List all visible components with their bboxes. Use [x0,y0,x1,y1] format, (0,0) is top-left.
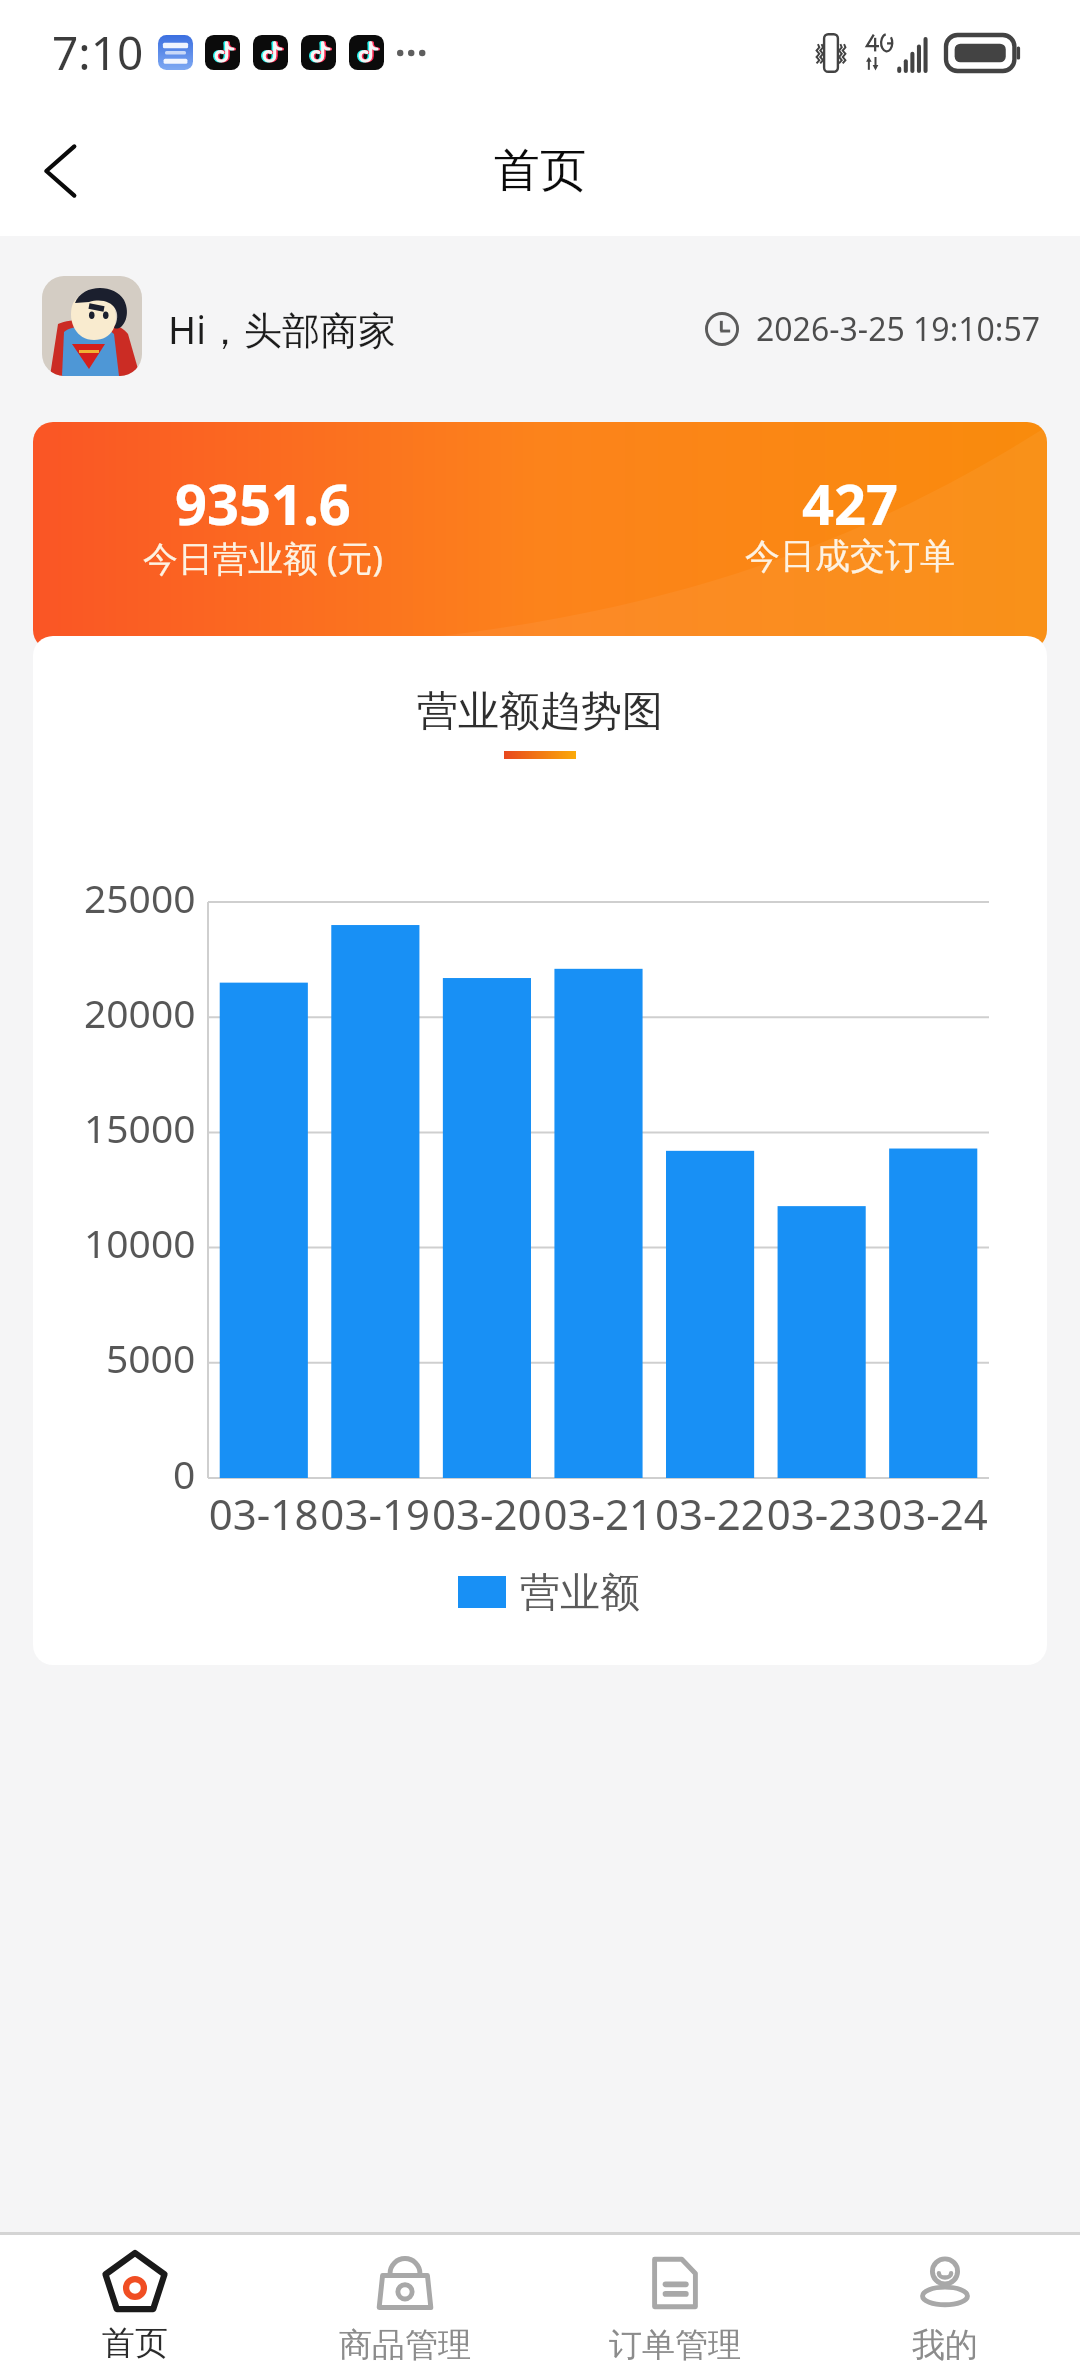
staticText: 7:10 [52,21,144,84]
staticText: 今日营业额 (元) [143,534,384,582]
staticText: 营业额 [520,1567,640,1617]
staticText: 订单管理 [609,2324,741,2366]
staticText: 首页 [494,142,586,200]
button[interactable]: 订单管理 [540,2235,810,2375]
staticText: 427 [802,465,899,541]
staticText: 9351.6 [175,465,351,541]
button[interactable]: 首页 [0,2235,270,2375]
button[interactable]: 我的 [810,2235,1080,2375]
staticText: 2026-3-25 19:10:57 [756,307,1041,351]
staticText: 今日成交订单 [745,534,955,578]
staticText: 商品管理 [339,2324,471,2366]
staticText: Hi，头部商家 [168,303,396,355]
button[interactable]: 商品管理 [270,2235,540,2375]
staticText: 营业额趋势图 [33,686,1047,738]
staticText: 首页 [102,2322,168,2364]
button[interactable]: Profile avatar [42,276,142,376]
button[interactable]: 9351.6 [63,422,463,650]
staticText: 我的 [912,2324,978,2366]
button[interactable]: Back [6,115,118,227]
button[interactable]: 427 [650,422,1047,650]
